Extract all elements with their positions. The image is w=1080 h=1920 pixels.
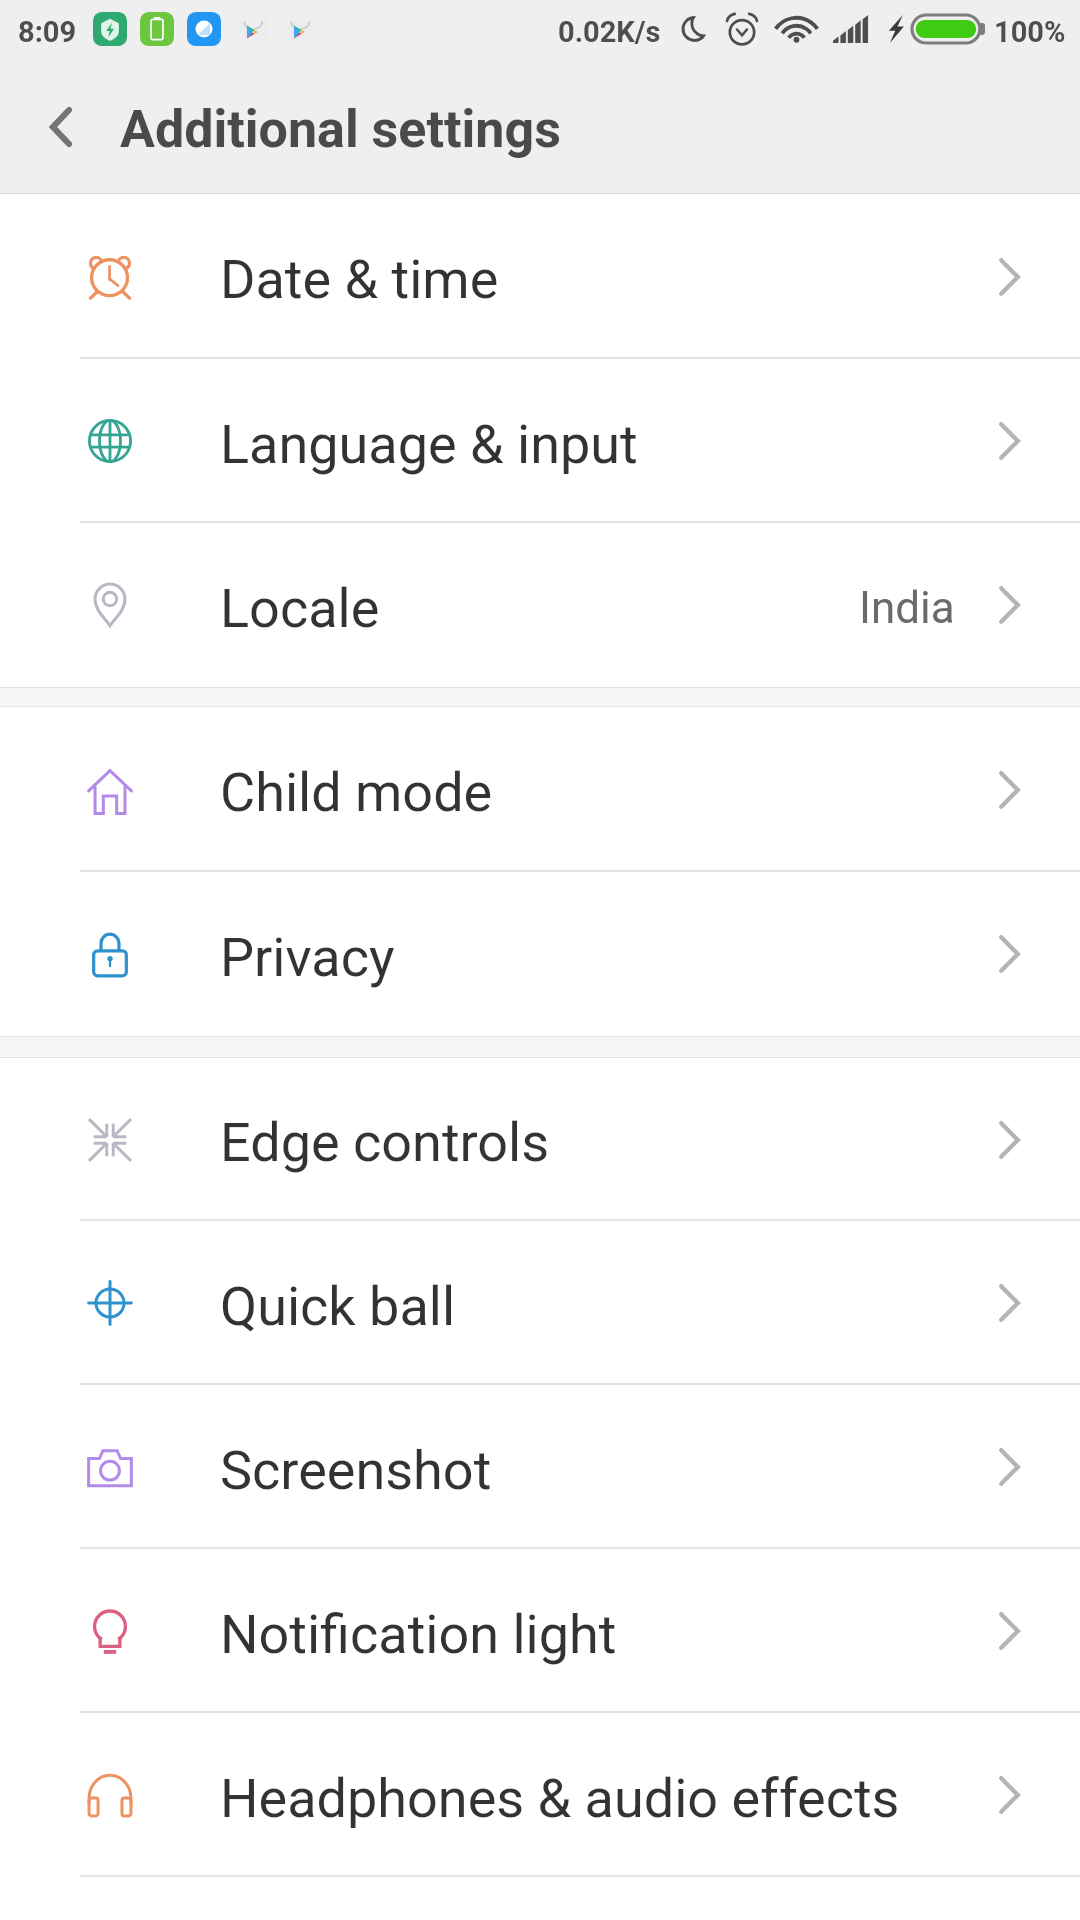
button[interactable]: Notification light bbox=[0, 1549, 1080, 1713]
button[interactable]: Privacy bbox=[0, 872, 1080, 1036]
staticText: Language & input bbox=[220, 413, 638, 476]
button[interactable]: Quick ball bbox=[0, 1221, 1080, 1385]
staticText: Privacy bbox=[220, 926, 395, 989]
button[interactable]: Language & input bbox=[0, 359, 1080, 523]
staticText: 100% bbox=[994, 15, 1066, 49]
button[interactable]: Locale bbox=[0, 523, 1080, 687]
button[interactable]: Screenshot bbox=[0, 1385, 1080, 1549]
staticText: 0.02K/s bbox=[558, 15, 661, 49]
staticText: Screenshot bbox=[220, 1439, 492, 1502]
staticText: Locale bbox=[220, 577, 380, 640]
staticText: Child mode bbox=[220, 761, 493, 824]
staticText: Quick ball bbox=[220, 1275, 456, 1338]
staticText: Headphones & audio effects bbox=[220, 1767, 900, 1830]
button[interactable]: Headphones & audio effects bbox=[0, 1713, 1080, 1877]
staticText: Date & time bbox=[220, 248, 499, 311]
staticText: Edge controls bbox=[220, 1111, 550, 1174]
button[interactable]: Date & time bbox=[0, 194, 1080, 359]
button[interactable]: Child mode bbox=[0, 707, 1080, 872]
button[interactable]: Edge controls bbox=[0, 1058, 1080, 1221]
staticText: 8:09 bbox=[18, 15, 77, 49]
staticText: India bbox=[859, 582, 955, 634]
staticText: Notification light bbox=[220, 1603, 617, 1666]
staticText: Additional settings bbox=[120, 99, 561, 160]
button[interactable]: Back bbox=[18, 85, 104, 169]
